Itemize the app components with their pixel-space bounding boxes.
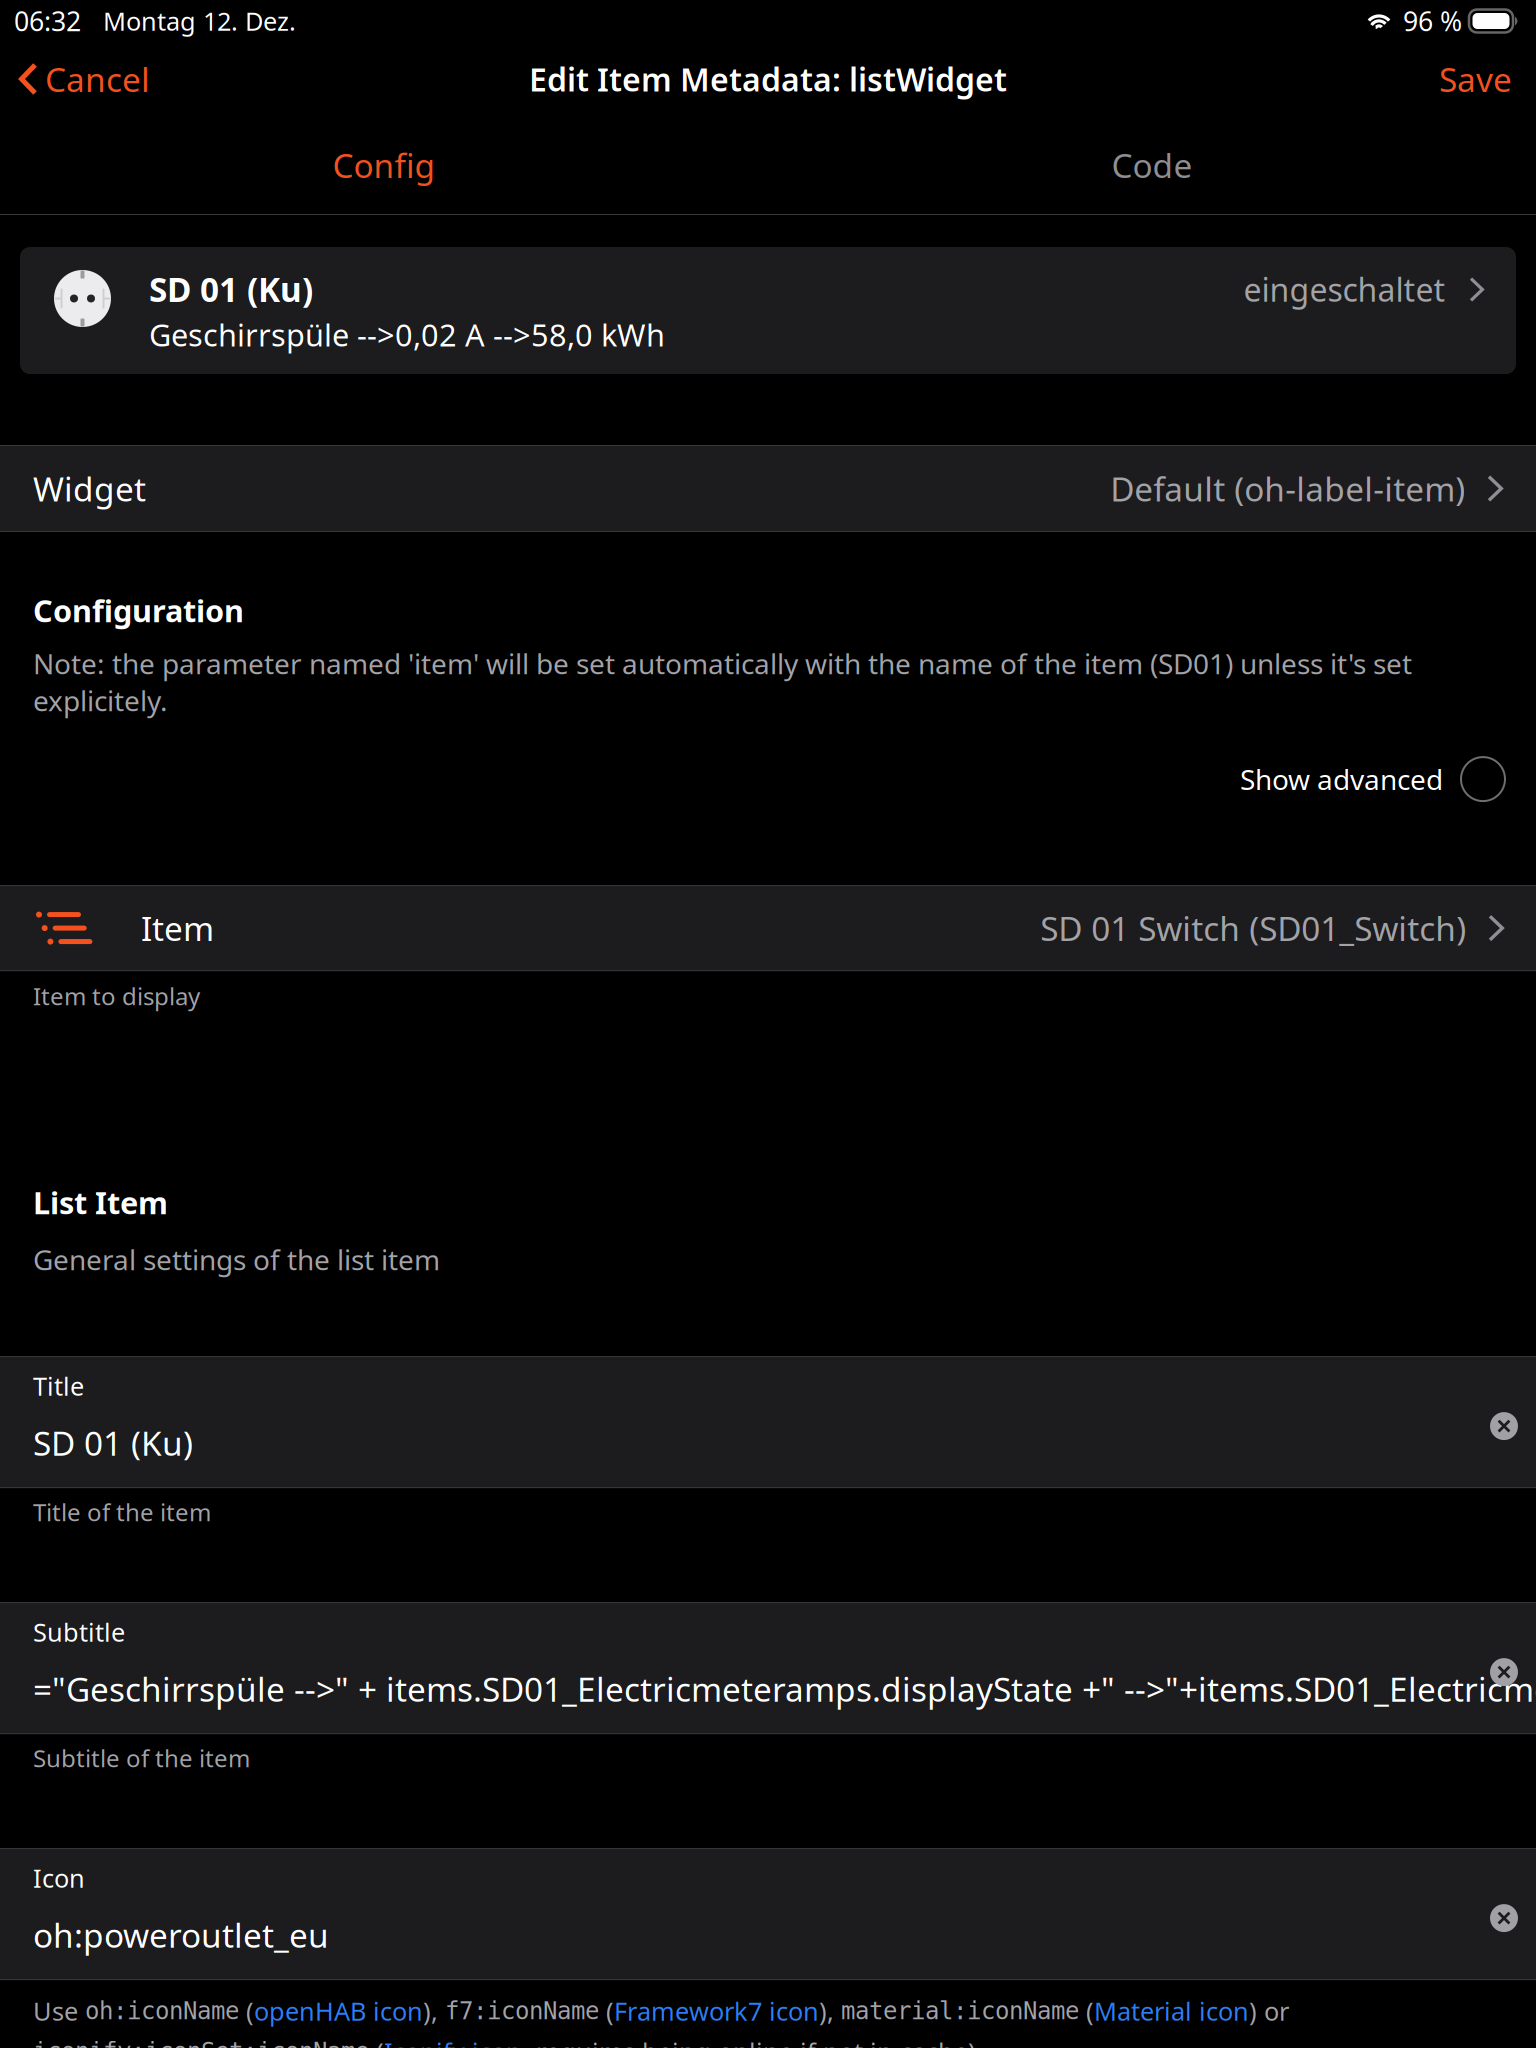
staticText: SD 01 (Ku) xyxy=(33,1421,193,1465)
staticText: 96 % xyxy=(1403,3,1462,39)
button[interactable]: openHAB icon xyxy=(254,1994,423,2028)
staticText: oh:poweroutlet_eu xyxy=(33,1913,329,1957)
button[interactable]: Iconify icon xyxy=(384,2035,522,2048)
staticText: Subtitle xyxy=(33,1615,125,1649)
staticText: SD 01 Switch (SD01_Switch) xyxy=(1040,906,1466,950)
button[interactable]: Material icon xyxy=(1094,1994,1249,2028)
staticText: Item xyxy=(141,906,214,950)
staticText: General settings of the list item xyxy=(33,1241,440,1278)
staticText: , requires being online if not in cache) xyxy=(522,2035,976,2048)
staticText: Title of the item xyxy=(33,1496,211,1528)
staticText: Save xyxy=(1439,57,1512,101)
staticText: openHAB icon xyxy=(254,1994,423,2028)
staticText: ( xyxy=(1079,1994,1094,2028)
button[interactable]: Show advanced xyxy=(33,757,1505,801)
staticText: ( xyxy=(369,2035,384,2048)
staticText: Material icon xyxy=(1094,1994,1249,2028)
staticText: Note: the parameter named 'item' will be… xyxy=(33,645,1412,719)
staticText: Use xyxy=(33,1994,85,2028)
staticText: ="Geschirrspüle -->" + items.SD01_Electr… xyxy=(33,1667,1536,1711)
staticText: Code xyxy=(1111,143,1192,187)
staticText: ( xyxy=(599,1994,614,2028)
button[interactable]: Clear text xyxy=(1482,1896,1526,1940)
staticText: material:iconName xyxy=(841,1997,1079,2024)
staticText: ), xyxy=(819,1994,841,2028)
staticText: Edit Item Metadata: listWidget xyxy=(529,58,1007,100)
staticText: Subtitle of the item xyxy=(33,1742,250,1774)
button[interactable]: Config xyxy=(0,116,768,214)
staticText: SD 01 (Ku) xyxy=(149,267,313,311)
staticText: Show advanced xyxy=(1240,760,1443,798)
staticText: Config xyxy=(332,143,435,187)
staticText: Montag 12. Dez. xyxy=(103,4,296,38)
staticText: Widget xyxy=(33,466,146,511)
staticText: 06:32 xyxy=(14,3,81,39)
staticText: eingeschaltet xyxy=(1243,268,1445,310)
button[interactable]: Code xyxy=(768,116,1536,214)
button[interactable]: Widget xyxy=(0,445,1536,532)
staticText: Framework7 icon xyxy=(614,1994,819,2028)
button[interactable]: Cancel xyxy=(0,43,166,115)
staticText: Cancel xyxy=(45,57,150,101)
staticText: iconify:iconSet:iconName xyxy=(33,2038,369,2048)
staticText: Icon xyxy=(33,1861,85,1895)
button[interactable]: Save xyxy=(1415,43,1536,115)
button[interactable]: Clear text xyxy=(1482,1650,1526,1694)
staticText: Geschirrspüle -->0,02 A -->58,0 kWh xyxy=(149,314,665,355)
staticText: Configuration xyxy=(33,590,244,631)
staticText: List Item xyxy=(33,1182,168,1223)
staticText: oh:iconName xyxy=(85,1997,239,2024)
staticText: Default (oh-label-item) xyxy=(1110,466,1465,511)
staticText: ) or xyxy=(1249,1994,1289,2028)
button[interactable]: Framework7 icon xyxy=(614,1994,819,2028)
staticText: Iconify icon xyxy=(384,2035,522,2048)
staticText: Title xyxy=(33,1369,84,1403)
staticText: f7:iconName xyxy=(445,1997,599,2024)
button[interactable]: Clear text xyxy=(1482,1404,1526,1448)
button[interactable]: Item xyxy=(0,885,1536,971)
staticText: ), xyxy=(423,1994,445,2028)
button[interactable]: SD 01 (Ku) xyxy=(20,247,1516,374)
staticText: Item to display xyxy=(33,980,200,1012)
staticText: ( xyxy=(239,1994,254,2028)
